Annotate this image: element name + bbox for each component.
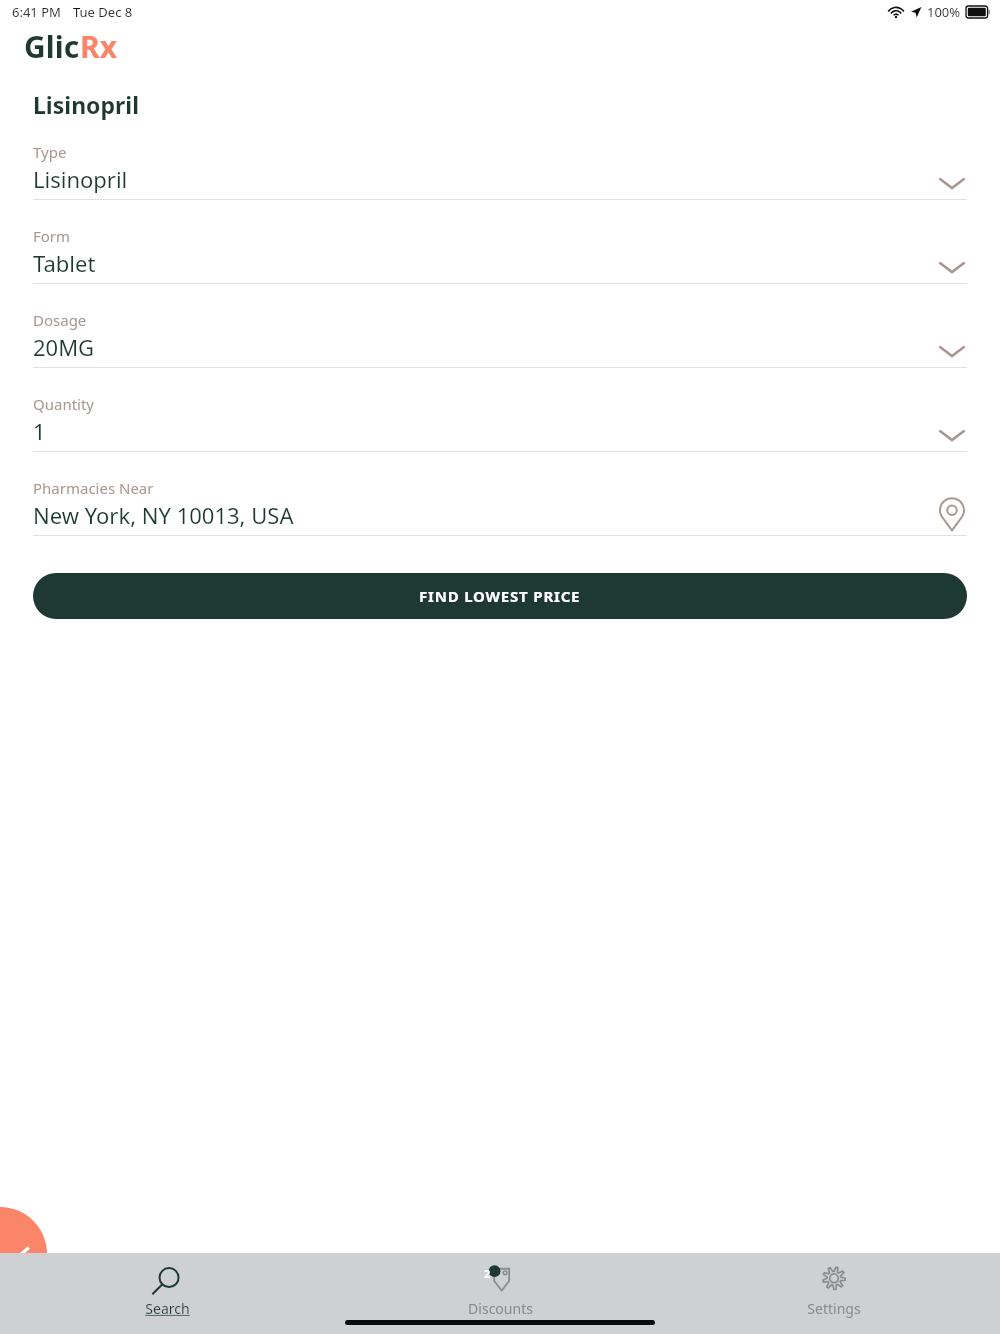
button[interactable]: Quantity [33,394,967,452]
staticText: Settings [807,1299,861,1318]
staticText: 20MG [33,332,95,362]
staticText: Lisinopril [33,89,140,120]
button[interactable]: Form [33,226,967,284]
staticText: FIND LOWEST PRICE [419,586,581,606]
staticText: Search [145,1299,190,1318]
staticText: Rx [80,26,118,67]
button[interactable]: FIND LOWEST PRICE [33,573,967,619]
button[interactable]: Settings [667,1253,1000,1318]
button[interactable]: Pharmacies Near [33,478,967,536]
button[interactable]: Search [0,1253,334,1318]
staticText: Pharmacies Near [33,478,154,498]
staticText: 1 [33,416,46,446]
staticText: 100% [927,3,961,21]
staticText: Tue Dec 8 [73,3,133,21]
staticText: Tablet [33,248,96,278]
button[interactable]: Type [33,142,967,200]
staticText: New York, NY 10013, USA [33,500,294,530]
staticText: Dosage [33,310,87,330]
staticText: Quantity [33,394,95,414]
staticText: Form [33,226,71,246]
staticText: Discounts [468,1299,533,1318]
staticText: Type [33,142,67,162]
staticText: Glic [24,26,80,67]
staticText: Lisinopril [33,164,128,194]
button[interactable]: Discounts [334,1253,667,1318]
staticText: 2 [484,1266,491,1281]
button[interactable]: Dosage [33,310,967,368]
staticText: 6:41 PM [12,3,61,21]
button[interactable]: Back [0,1207,47,1301]
